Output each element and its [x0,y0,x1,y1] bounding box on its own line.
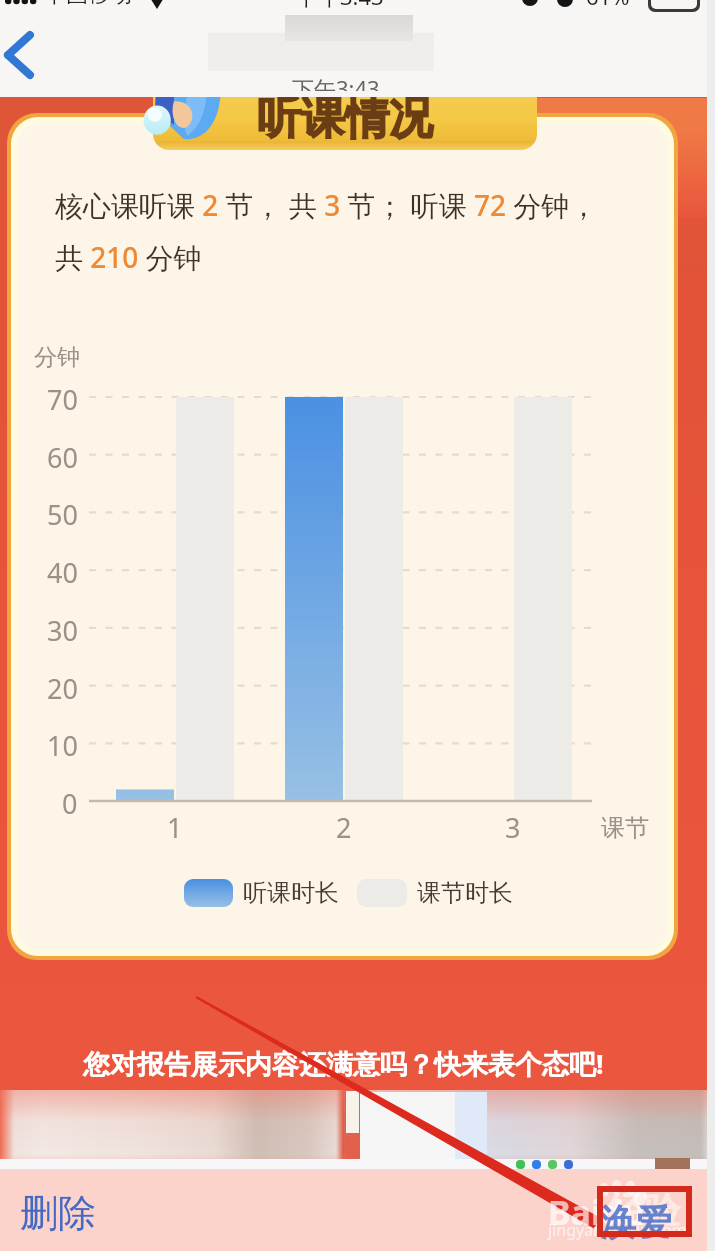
staticText: 下午3:43 [292,79,380,91]
button[interactable]: Back [0,22,62,84]
staticText: 分钟 [34,343,80,372]
staticText: 经验 [608,1188,680,1233]
staticText: 下午3:43 [296,0,384,11]
staticText: 30 [47,612,78,649]
staticText: 中国移动 [44,0,132,9]
staticText: 涣爱 [600,1200,672,1245]
staticText: 课节时长 [417,878,513,908]
staticText: jingyan.baidu.com [548,1219,687,1241]
staticText: 删除 [20,1189,96,1237]
staticText: 70 [47,381,78,418]
staticText: 20 [47,670,78,707]
staticText: 61% [586,0,630,11]
staticText: 60 [47,439,78,476]
staticText: 40 [47,554,78,591]
staticText: 1 [167,809,183,846]
staticText: 核心课听课 2 节， 共 3 节； 听课 72 分钟， [55,186,598,224]
staticText: 2 [336,809,352,846]
button[interactable]: 删除 [6,1182,116,1244]
staticText: 听课时长 [243,878,339,908]
staticText: Baidu [548,1189,645,1235]
staticText: 课节 [601,813,649,843]
staticText: 3 [505,809,521,846]
staticText: 共 210 分钟 [55,238,202,276]
staticText: 听课情况 [257,91,433,146]
staticText: 0 [62,785,78,822]
staticText: 50 [47,496,78,533]
staticText: 您对报告展示内容还满意吗？快来表个态吧! [83,1045,604,1082]
staticText: 10 [47,727,78,764]
